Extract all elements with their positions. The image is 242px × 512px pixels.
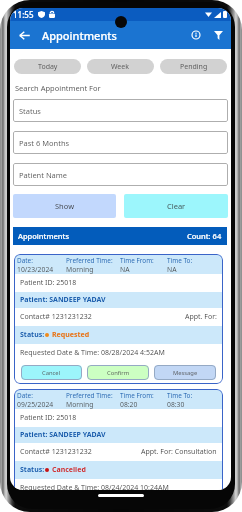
button[interactable]: Date: bbox=[14, 389, 223, 490]
staticText: Time From: bbox=[120, 391, 154, 400]
staticText: Time To: bbox=[167, 391, 193, 400]
staticText: Patient: SANDEEP YADAV bbox=[20, 430, 106, 440]
staticText: Cancelled bbox=[52, 465, 86, 475]
staticText: Status bbox=[19, 106, 41, 116]
staticText: 08:30 bbox=[167, 400, 185, 409]
staticText: Status: bbox=[20, 465, 45, 475]
staticText: Patient ID: 25018 bbox=[20, 413, 77, 423]
staticText: Today bbox=[38, 62, 58, 72]
staticText: Requested bbox=[52, 330, 90, 340]
staticText: Preferred Time: bbox=[66, 391, 113, 400]
staticText: NA bbox=[167, 265, 177, 274]
staticText: Pending bbox=[180, 62, 208, 72]
staticText: Show bbox=[55, 201, 75, 211]
staticText: Appointments bbox=[18, 231, 70, 241]
button[interactable]: Date: bbox=[14, 254, 223, 384]
button[interactable]: Status bbox=[13, 99, 228, 122]
staticText: Requested Date & Time: 08/28/2024 4:52AM bbox=[20, 348, 165, 358]
staticText: Appointments bbox=[42, 28, 117, 43]
staticText: Message bbox=[173, 369, 198, 377]
button[interactable]: Patient Name bbox=[13, 163, 228, 186]
button[interactable]: Week bbox=[87, 59, 154, 74]
staticText: Date: bbox=[17, 391, 33, 400]
staticText: Patient Name bbox=[19, 170, 68, 180]
button[interactable]: Message bbox=[154, 365, 216, 380]
button[interactable]: Today bbox=[14, 59, 81, 74]
button[interactable]: Show bbox=[13, 194, 116, 218]
staticText: Week bbox=[111, 62, 130, 72]
staticText: Past 6 Months bbox=[19, 138, 70, 148]
staticText: Confirm bbox=[107, 369, 130, 377]
button[interactable]: Confirm bbox=[87, 365, 149, 380]
staticText: Appt. For: bbox=[185, 312, 217, 322]
staticText: Patient: SANDEEP YADAV bbox=[20, 295, 106, 305]
button[interactable]: Cancel bbox=[21, 365, 82, 380]
staticText: Preferred Time: bbox=[66, 256, 113, 265]
staticText: Patient ID: 25018 bbox=[20, 278, 77, 288]
staticText: Morning bbox=[66, 265, 94, 274]
staticText: 10/23/2024 bbox=[17, 265, 54, 274]
staticText: Clear bbox=[167, 201, 186, 211]
staticText: Appt. For: Consultation bbox=[141, 447, 217, 457]
button[interactable]: Past 6 Months bbox=[13, 131, 228, 154]
staticText: Cancel bbox=[42, 369, 61, 377]
staticText: 08:20 bbox=[120, 400, 138, 409]
button[interactable]: Filter bbox=[210, 27, 226, 43]
staticText: Contact# 1231231232 bbox=[20, 447, 92, 457]
staticText: Requested Date & Time: 08/24/2024 10:24A… bbox=[20, 483, 169, 490]
staticText: Date: bbox=[17, 256, 33, 265]
staticText: Count: 64 bbox=[187, 231, 222, 241]
staticText: Morning bbox=[66, 400, 94, 409]
staticText: NA bbox=[120, 265, 130, 274]
staticText: Time To: bbox=[167, 256, 193, 265]
staticText: 11:55 bbox=[13, 9, 34, 20]
staticText: Time From: bbox=[120, 256, 154, 265]
button[interactable]: Info bbox=[188, 27, 204, 43]
button[interactable]: Clear bbox=[124, 194, 228, 218]
staticText: Contact# 1231231232 bbox=[20, 312, 92, 322]
staticText: 09/25/2024 bbox=[17, 400, 54, 409]
staticText: Search Appointment For bbox=[15, 83, 101, 93]
staticText: Status: bbox=[20, 330, 45, 340]
button[interactable]: Pending bbox=[160, 59, 227, 74]
button[interactable]: Back bbox=[15, 26, 33, 44]
